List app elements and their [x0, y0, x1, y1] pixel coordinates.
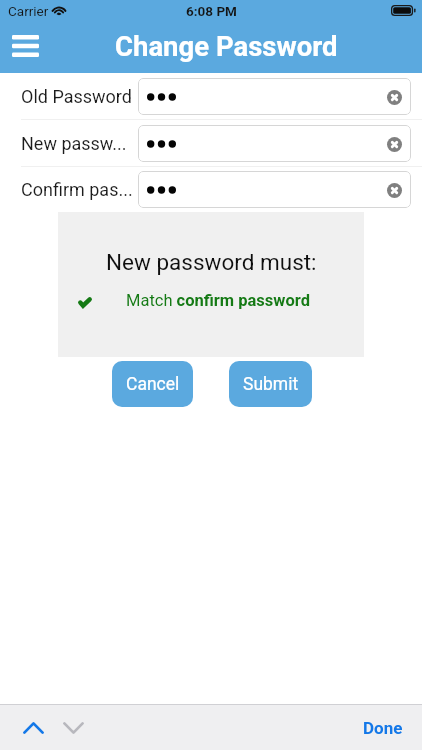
button[interactable]: New passw... — [0, 120, 422, 167]
button[interactable]: Old Password — [138, 78, 411, 115]
button[interactable]: Submit — [229, 361, 312, 407]
button[interactable]: New passw... — [138, 125, 411, 162]
button[interactable]: Menu — [3, 26, 47, 65]
staticText: Old Password — [21, 86, 132, 107]
staticText: Cancel — [126, 374, 180, 395]
staticText: Submit — [243, 374, 299, 395]
button[interactable]: Confirm pas... — [0, 166, 422, 213]
staticText: Carrier — [8, 3, 49, 19]
button[interactable]: Cancel — [112, 361, 193, 407]
button[interactable]: Confirm pas... — [138, 171, 411, 208]
button[interactable]: Clear text — [383, 86, 405, 108]
button[interactable]: Done — [363, 705, 403, 750]
staticText: New passw... — [21, 133, 127, 154]
button[interactable]: Next field — [50, 705, 96, 750]
staticText: Match confirm password — [126, 291, 310, 310]
staticText: Change Password — [115, 30, 338, 62]
button[interactable]: Clear text — [383, 179, 405, 201]
button[interactable]: Old Password — [0, 73, 422, 120]
staticText: Confirm pas... — [21, 179, 133, 200]
button[interactable]: Previous field — [10, 705, 56, 750]
staticText: New password must: — [106, 249, 317, 275]
staticText: Done — [363, 718, 403, 738]
staticText: 6:08 PM — [186, 3, 237, 19]
button[interactable]: Clear text — [383, 133, 405, 155]
